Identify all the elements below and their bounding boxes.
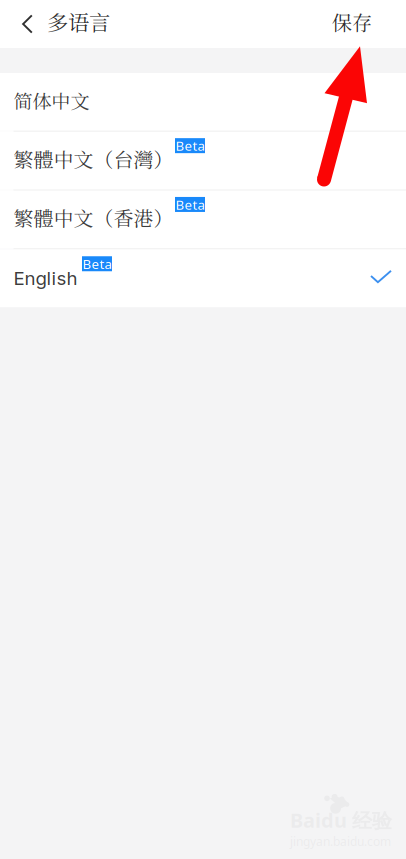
staticText: Beta: [175, 137, 204, 154]
button[interactable]: 保存: [316, 0, 406, 48]
staticText: Beta: [175, 196, 204, 213]
staticText: 繁體中文（香港）: [13, 203, 173, 232]
button[interactable]: English: [0, 249, 406, 307]
staticText: 简体中文: [13, 87, 89, 114]
button[interactable]: 简体中文: [0, 73, 406, 131]
staticText: 保存: [332, 7, 372, 36]
staticText: 繁體中文（台灣）: [13, 144, 173, 173]
button[interactable]: 繁體中文（台灣）: [0, 132, 406, 190]
staticText: English: [13, 267, 77, 290]
staticText: Baidu 经验: [290, 807, 392, 833]
button[interactable]: Back: [0, 0, 47, 48]
button[interactable]: 繁體中文（香港）: [0, 191, 406, 248]
staticText: 多语言: [47, 6, 110, 37]
staticText: Beta: [82, 255, 111, 273]
